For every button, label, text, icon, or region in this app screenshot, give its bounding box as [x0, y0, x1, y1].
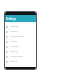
staticText: Display [10, 30, 18, 33]
button[interactable]: Storage [5, 44, 36, 49]
button[interactable]: Notifications [5, 34, 36, 39]
button[interactable]: System [5, 59, 36, 64]
button[interactable]: Battery [5, 49, 36, 54]
staticText: Network [10, 25, 20, 28]
staticText: System [10, 60, 18, 63]
staticText: Accessibility [10, 55, 23, 58]
staticText: Notifications [10, 35, 24, 38]
staticText: Sound [10, 40, 17, 43]
staticText: Battery [10, 50, 18, 53]
button[interactable]: Settings [5, 15, 36, 22]
button[interactable]: Accessibility [5, 54, 36, 59]
button[interactable]: Sound [5, 39, 36, 44]
button[interactable]: Display [5, 29, 36, 34]
staticText: Storage [10, 45, 19, 48]
staticText: Settings [6, 17, 16, 21]
button[interactable]: Network [5, 24, 36, 29]
